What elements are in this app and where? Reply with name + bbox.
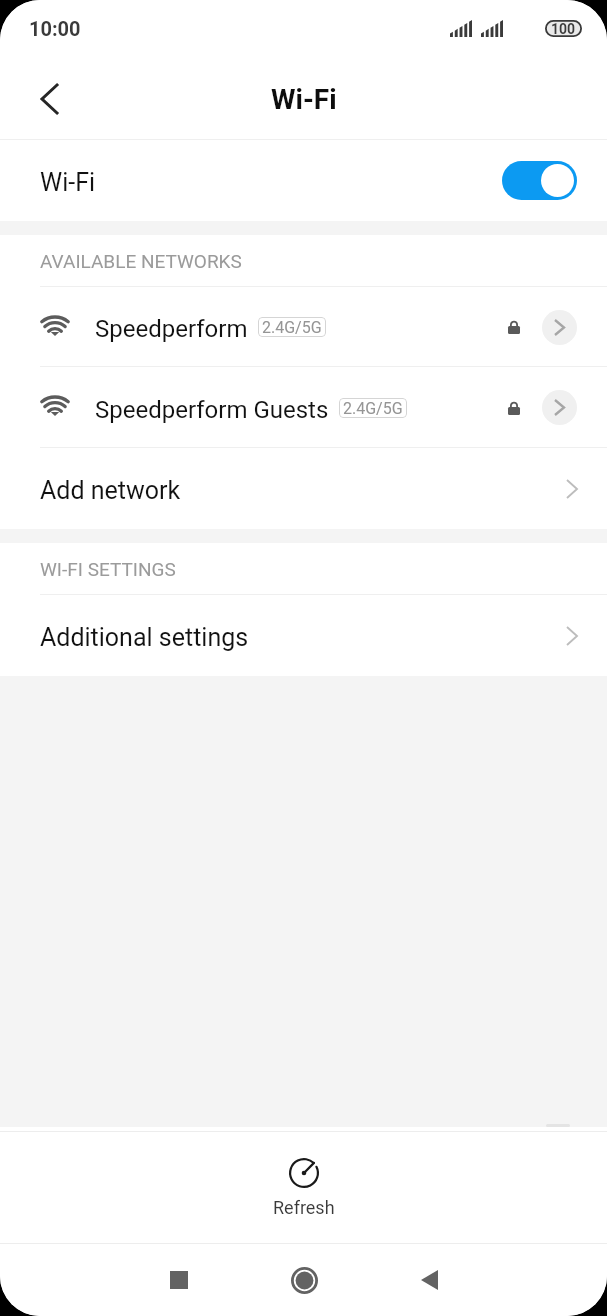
button[interactable]: Additional settings [0,595,607,676]
button[interactable]: Speedperform Guests [0,367,607,448]
staticText: 2.4G/5G [343,399,403,418]
button[interactable]: Recent apps [143,1244,215,1316]
staticText: 2.4G/5G [262,318,322,337]
button[interactable]: Wi-Fi [0,140,607,221]
staticText: 100 [551,21,576,37]
staticText: Add network [40,476,181,505]
button[interactable]: Network details [542,310,577,345]
button[interactable]: Add network [0,448,607,529]
staticText: Additional settings [40,623,249,652]
button[interactable]: Refresh [0,1127,607,1244]
staticText: 10:00 [29,17,81,40]
staticText: Refresh [273,1197,335,1218]
staticText: Wi-Fi [271,83,337,116]
button[interactable]: Back [21,71,77,127]
button[interactable]: Network details [542,390,577,425]
button[interactable]: Speedperform [0,287,607,367]
button[interactable]: Wi-Fi on/off [502,161,577,200]
staticText: AVAILABLE NETWORKS [40,250,242,272]
button[interactable]: Home [268,1244,340,1316]
staticText: Wi-Fi [40,168,96,197]
staticText: Speedperform [95,315,248,343]
button[interactable]: Back [393,1244,465,1316]
staticText: Speedperform Guests [95,396,329,424]
staticText: WI-FI SETTINGS [40,558,176,580]
